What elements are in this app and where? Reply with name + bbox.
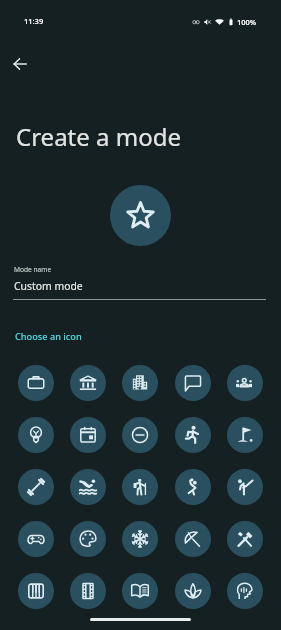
button[interactable]: Fitness: [18, 469, 54, 505]
button[interactable]: Mode icon: [110, 185, 171, 246]
button[interactable]: Running: [175, 417, 211, 453]
staticText: 100%: [237, 17, 257, 27]
button[interactable]: Apartment: [122, 365, 158, 401]
staticText: 11:39: [24, 16, 44, 26]
button[interactable]: Reading: [122, 573, 158, 609]
button[interactable]: Tools: [227, 521, 263, 557]
button[interactable]: Gaming: [18, 521, 54, 557]
button[interactable]: Idea: [18, 417, 54, 453]
button[interactable]: Beach: [175, 521, 211, 557]
button[interactable]: Handball: [175, 469, 211, 505]
button[interactable]: Martial arts: [227, 469, 263, 505]
button[interactable]: Mindfulness: [227, 573, 263, 609]
button[interactable]: Calendar: [70, 417, 106, 453]
staticText: Mode name: [14, 265, 52, 274]
button[interactable]: Golf: [227, 417, 263, 453]
staticText: Create a mode: [16, 120, 181, 153]
staticText: Custom mode: [14, 279, 83, 293]
button[interactable]: Bank: [70, 365, 106, 401]
button[interactable]: Chat: [175, 365, 211, 401]
button[interactable]: Swimming: [70, 469, 106, 505]
button[interactable]: Work: [18, 365, 54, 401]
button[interactable]: Back: [2, 46, 38, 82]
button[interactable]: Hiking: [122, 469, 158, 505]
button[interactable]: Spa: [175, 573, 211, 609]
button[interactable]: Do not disturb: [122, 417, 158, 453]
button[interactable]: Groups: [227, 365, 263, 401]
staticText: Choose an icon: [15, 330, 82, 343]
button[interactable]: Winter: [122, 521, 158, 557]
button[interactable]: Art: [70, 521, 106, 557]
button[interactable]: Music: [18, 573, 54, 609]
button[interactable]: Movies: [70, 573, 106, 609]
